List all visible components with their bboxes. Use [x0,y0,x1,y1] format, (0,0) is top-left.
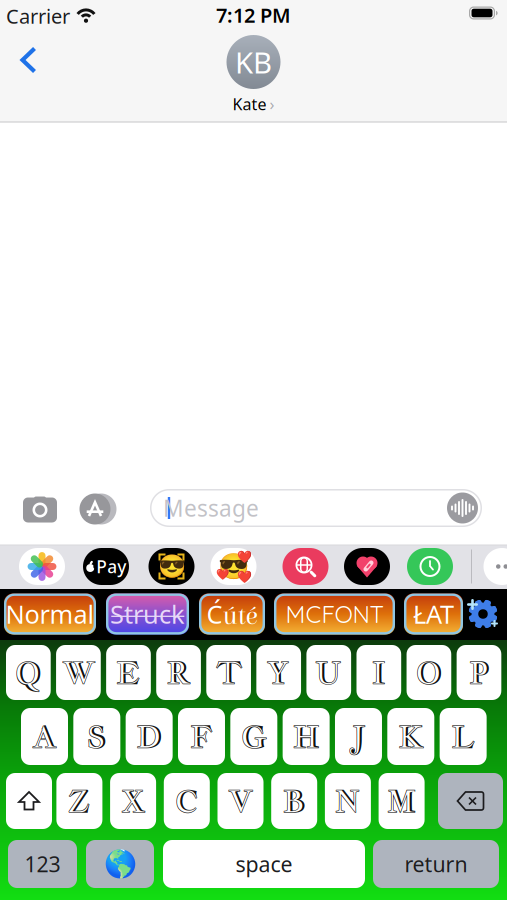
staticText: space [235,850,292,878]
staticText: B [283,782,306,820]
button[interactable]: Y [256,645,301,700]
button[interactable]: Q [6,645,51,700]
staticText: ❤️ [236,550,251,563]
button[interactable]: Struck [106,593,189,634]
staticText: Normal [5,597,94,631]
staticText: › [269,93,274,115]
button[interactable]: G [230,708,277,765]
button[interactable]: D [126,708,173,765]
staticText: V [228,782,252,820]
staticText: 123 [24,850,60,878]
button[interactable]: Delete [438,773,503,829]
staticText: 😎 [157,554,185,579]
staticText: L [451,717,475,756]
staticText: N [335,782,361,820]
staticText: Pay [96,555,126,578]
staticText: Message [163,493,259,523]
staticText: 😎 [217,552,249,581]
staticText: ❤️ [237,570,252,583]
staticText: S [87,717,107,756]
staticText: Z [68,782,91,820]
button[interactable]: Next keyboard [86,840,154,888]
button[interactable]: Dictation [447,492,478,523]
button[interactable]: Apps [78,492,118,526]
staticText: U [315,653,342,692]
staticText: MCFONT [285,599,383,629]
button[interactable]: J [335,708,382,765]
staticText: A [32,717,57,756]
button[interactable]: Apple Pay [83,548,129,585]
button[interactable]: K [387,708,434,765]
staticText: R [167,653,191,692]
button[interactable]: Return [373,840,499,888]
button[interactable]: Numbers [8,840,77,888]
button[interactable]: X [110,773,156,829]
staticText: T [216,653,241,692]
staticText: O [415,653,442,692]
staticText: Q [15,653,42,692]
button[interactable]: Memoji Stickers [210,548,256,585]
button[interactable]: Recently Used [407,548,453,585]
button[interactable]: I [356,645,401,700]
button[interactable]: Digital Touch [344,548,390,585]
staticText: return [404,850,467,878]
staticText: G [241,717,267,756]
staticText: Kate [232,93,266,115]
button[interactable]: S [73,708,120,765]
staticText: Ćúté [206,597,257,631]
button[interactable]: Search images [282,548,328,585]
button[interactable]: More apps [483,548,507,585]
button[interactable]: Back [9,40,49,80]
button[interactable]: Keyboard settings [465,596,501,632]
staticText: ŁAT [413,597,454,631]
staticText: D [136,717,162,756]
staticText: M [387,782,416,820]
button[interactable]: Kate profile [226,35,280,89]
staticText: Carrier [6,3,70,29]
staticText: 7:12 PM [216,2,291,28]
staticText: J [351,717,365,756]
button[interactable]: Ćúté [199,593,265,634]
button[interactable]: N [325,773,371,829]
button[interactable]: Z [56,773,102,829]
staticText: H [293,717,320,756]
button[interactable]: A [21,708,68,765]
button[interactable]: P [457,645,501,700]
button[interactable]: C [164,773,210,829]
button[interactable]: B [271,773,317,829]
button[interactable]: Memoji [148,548,194,585]
staticText: K [398,717,423,756]
button[interactable]: Shift [6,773,52,829]
button[interactable]: W [56,645,101,700]
staticText: W [62,653,94,692]
staticText: E [116,653,141,692]
button[interactable]: L [440,708,487,765]
staticText: X [122,782,145,820]
staticText: P [469,653,489,692]
staticText: C [175,782,199,820]
staticText: I [372,653,386,692]
button[interactable]: Photos [19,548,65,585]
button[interactable]: ŁAT [404,593,463,634]
button[interactable]: U [306,645,351,700]
button[interactable]: Camera [20,492,60,526]
button[interactable]: Kate [232,93,274,115]
button[interactable]: F [178,708,225,765]
staticText: F [190,717,213,756]
button[interactable]: H [283,708,330,765]
button[interactable]: MCFONT [274,593,395,634]
button[interactable]: Normal [4,593,96,634]
button[interactable]: O [407,645,451,700]
staticText: Struck [110,597,185,631]
staticText: KB [235,42,272,81]
button[interactable]: M [379,773,425,829]
button[interactable]: Space [163,840,365,888]
button[interactable]: V [217,773,263,829]
button[interactable]: E [106,645,151,700]
staticText: Y [267,653,290,692]
button[interactable]: T [206,645,251,700]
button[interactable]: R [156,645,201,700]
staticText: ❤️ [216,568,229,581]
staticText: 🌎 [103,849,136,879]
